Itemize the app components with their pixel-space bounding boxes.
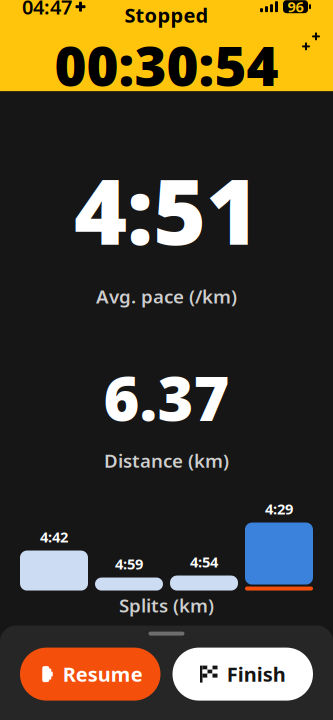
staticText: Distance (km) [104, 448, 229, 473]
staticText: 6.37 [103, 357, 229, 438]
staticText: Avg. pace (/km) [96, 284, 237, 309]
staticText: Splits (km) [119, 593, 214, 618]
staticText: Stopped [124, 2, 208, 28]
button[interactable]: Collapse [289, 19, 333, 63]
staticText: Resume [63, 661, 143, 687]
staticText: 00:30:54 [54, 28, 278, 101]
staticText: 4:29 [265, 499, 293, 519]
staticText: 04:47 [22, 0, 72, 20]
staticText: Finish [227, 661, 286, 687]
staticText: 4:54 [190, 552, 218, 572]
button[interactable]: Resume [20, 648, 160, 701]
staticText: 4:59 [115, 554, 143, 574]
staticText: 4:51 [74, 149, 259, 270]
staticText: 4:42 [40, 527, 68, 547]
button[interactable]: Finish [172, 648, 313, 701]
staticText: 96 [287, 0, 303, 16]
